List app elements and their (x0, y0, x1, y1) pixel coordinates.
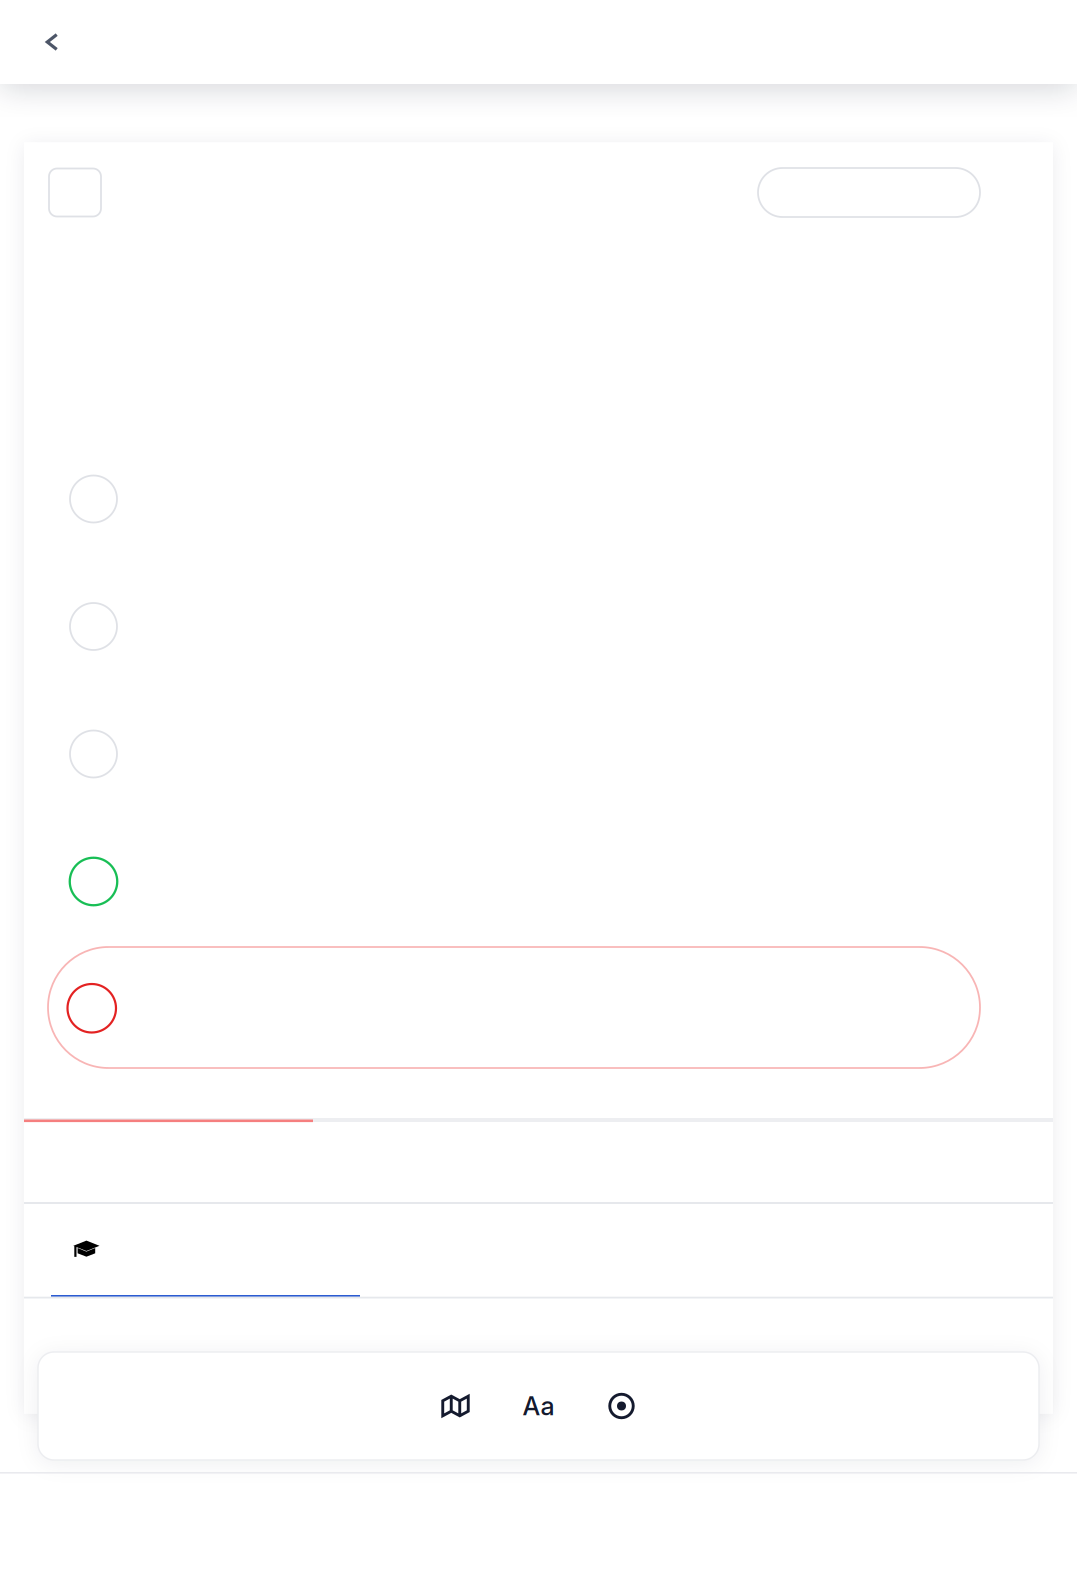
button[interactable]: Map (427, 1376, 483, 1436)
button[interactable]: Explanation link (51, 1295, 360, 1297)
staticText: Aa (522, 1391, 554, 1421)
button[interactable]: Text size (510, 1376, 566, 1436)
button[interactable]: Question number (49, 168, 101, 216)
button[interactable]: Back (0, 0, 104, 84)
button[interactable]: Focus mode (593, 1376, 649, 1436)
button[interactable]: Answer option (24, 858, 1053, 905)
button[interactable]: Your answer (48, 947, 980, 1068)
button[interactable]: Bookmark question (758, 168, 980, 217)
